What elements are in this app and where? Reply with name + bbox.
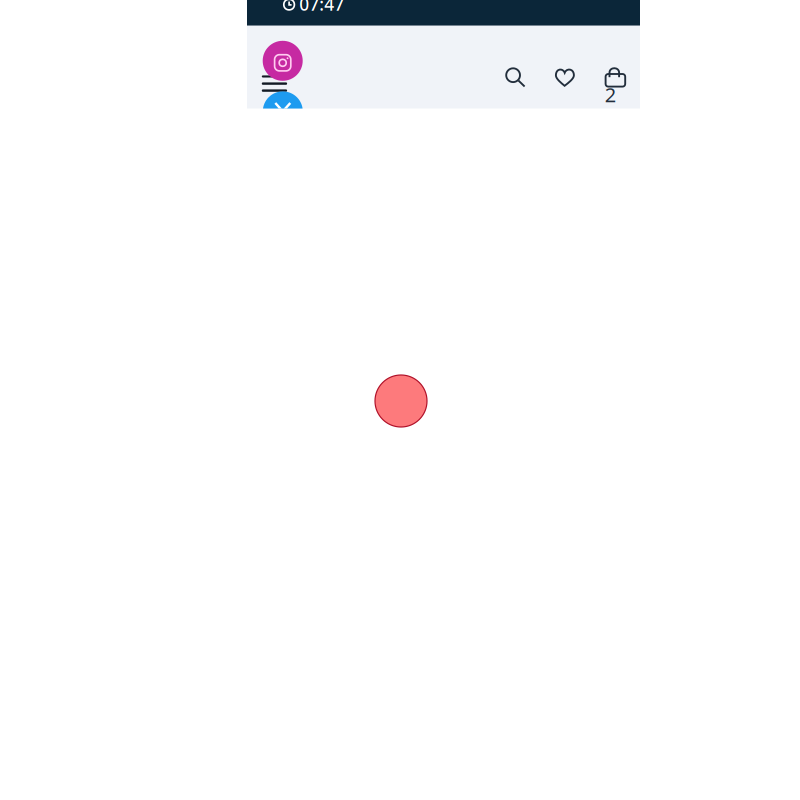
button[interactable]: X xyxy=(263,91,303,131)
button[interactable]: Wishlist xyxy=(555,68,574,86)
button[interactable]: Cart, 2 items xyxy=(604,66,626,108)
button[interactable]: Instagram xyxy=(263,41,303,81)
staticText: 07:47 xyxy=(299,0,344,15)
button[interactable]: Menu xyxy=(262,75,287,92)
button[interactable]: Search xyxy=(505,67,525,87)
staticText: 2 xyxy=(605,81,616,108)
